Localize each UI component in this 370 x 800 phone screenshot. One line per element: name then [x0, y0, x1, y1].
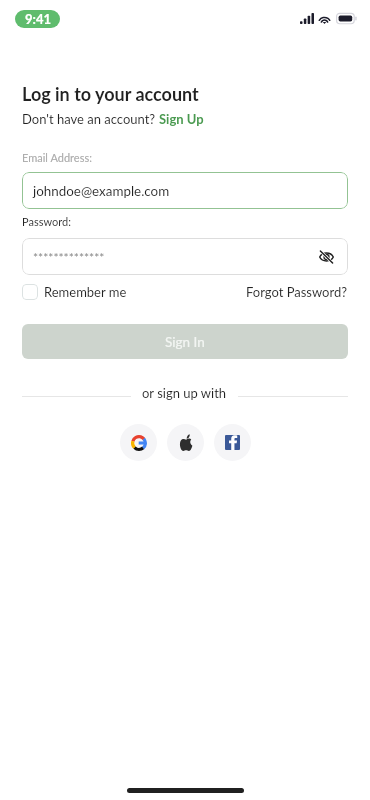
staticText: **************: [33, 250, 105, 264]
button[interactable]: johndoe@example.com: [22, 172, 348, 209]
staticText: Password:: [22, 215, 71, 228]
staticText: Don't have an account?: [22, 111, 159, 127]
button[interactable]: Remember me: [22, 284, 127, 300]
staticText: Remember me: [44, 284, 127, 300]
button[interactable]: Sign In: [22, 324, 348, 359]
button[interactable]: Sign in with Facebook: [214, 424, 251, 461]
button[interactable]: Sign Up: [159, 111, 204, 127]
staticText: Email Address:: [22, 151, 92, 164]
staticText: Forgot Password?: [246, 284, 348, 300]
button[interactable]: Sign in with Apple: [167, 424, 204, 461]
staticText: Sign Up: [159, 111, 204, 127]
button[interactable]: Sign in with Google: [120, 424, 157, 461]
staticText: Log in to your account: [22, 83, 199, 105]
staticText: Sign In: [165, 334, 205, 350]
button[interactable]: Show password: [315, 246, 337, 268]
button[interactable]: Forgot Password?: [246, 284, 348, 300]
staticText: or sign up with: [142, 385, 227, 401]
staticText: johndoe@example.com: [33, 183, 170, 199]
staticText: 9:41: [25, 11, 51, 27]
button[interactable]: **************: [22, 238, 348, 275]
